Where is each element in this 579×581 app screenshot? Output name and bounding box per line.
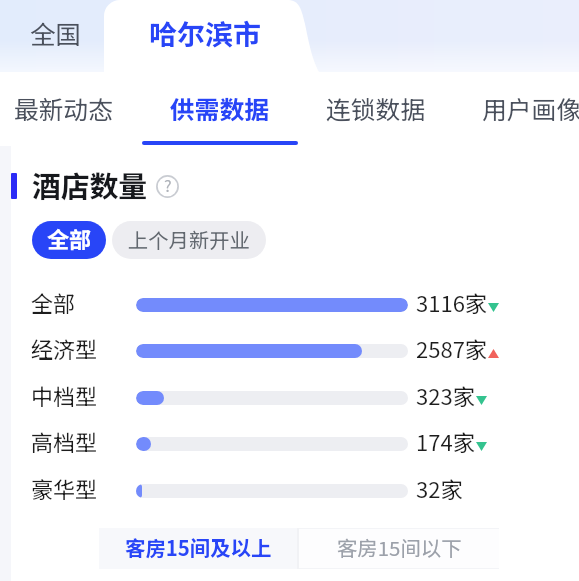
- staticText: 32家: [416, 472, 463, 504]
- button[interactable]: 最新动态: [0, 72, 142, 148]
- staticText: 全国: [30, 14, 82, 51]
- button[interactable]: 客房15间以下: [299, 528, 499, 569]
- button[interactable]: 经济型: [0, 328, 579, 374]
- staticText: 3116家: [416, 286, 487, 318]
- button[interactable]: 用户画像: [454, 72, 579, 148]
- staticText: 上个月新开业: [128, 224, 250, 253]
- staticText: 高档型: [31, 425, 98, 457]
- staticText: 连锁数据: [326, 90, 426, 126]
- staticText: 客房15间以下: [337, 532, 462, 562]
- button[interactable]: 哈尔滨市: [108, 0, 303, 72]
- button[interactable]: 供需数据: [142, 72, 298, 148]
- staticText: 中档型: [31, 379, 98, 411]
- button[interactable]: 帮助: [156, 175, 179, 198]
- button[interactable]: 高档型: [0, 421, 579, 467]
- button[interactable]: 豪华型: [0, 468, 579, 514]
- button[interactable]: 中档型: [0, 375, 579, 421]
- button[interactable]: 客房15间及以上: [99, 528, 297, 569]
- staticText: 客房15间及以上: [125, 532, 272, 562]
- staticText: 全部: [31, 286, 76, 318]
- staticText: 全部: [47, 222, 92, 254]
- staticText: 用户画像: [482, 90, 579, 126]
- button[interactable]: 连锁数据: [298, 72, 454, 148]
- button[interactable]: 全国: [14, 0, 98, 72]
- staticText: 经济型: [31, 332, 98, 364]
- staticText: 豪华型: [31, 472, 98, 504]
- button[interactable]: 上个月新开业: [112, 221, 266, 259]
- button[interactable]: 全部: [0, 282, 579, 328]
- staticText: 2587家: [416, 332, 487, 364]
- button[interactable]: 全部: [32, 221, 106, 259]
- staticText: 哈尔滨市: [149, 13, 262, 54]
- staticText: 174家: [416, 425, 475, 457]
- staticText: 供需数据: [170, 90, 270, 126]
- staticText: 酒店数量: [32, 164, 148, 206]
- staticText: ?: [164, 173, 172, 196]
- staticText: 最新动态: [14, 90, 114, 126]
- staticText: 323家: [416, 379, 475, 411]
